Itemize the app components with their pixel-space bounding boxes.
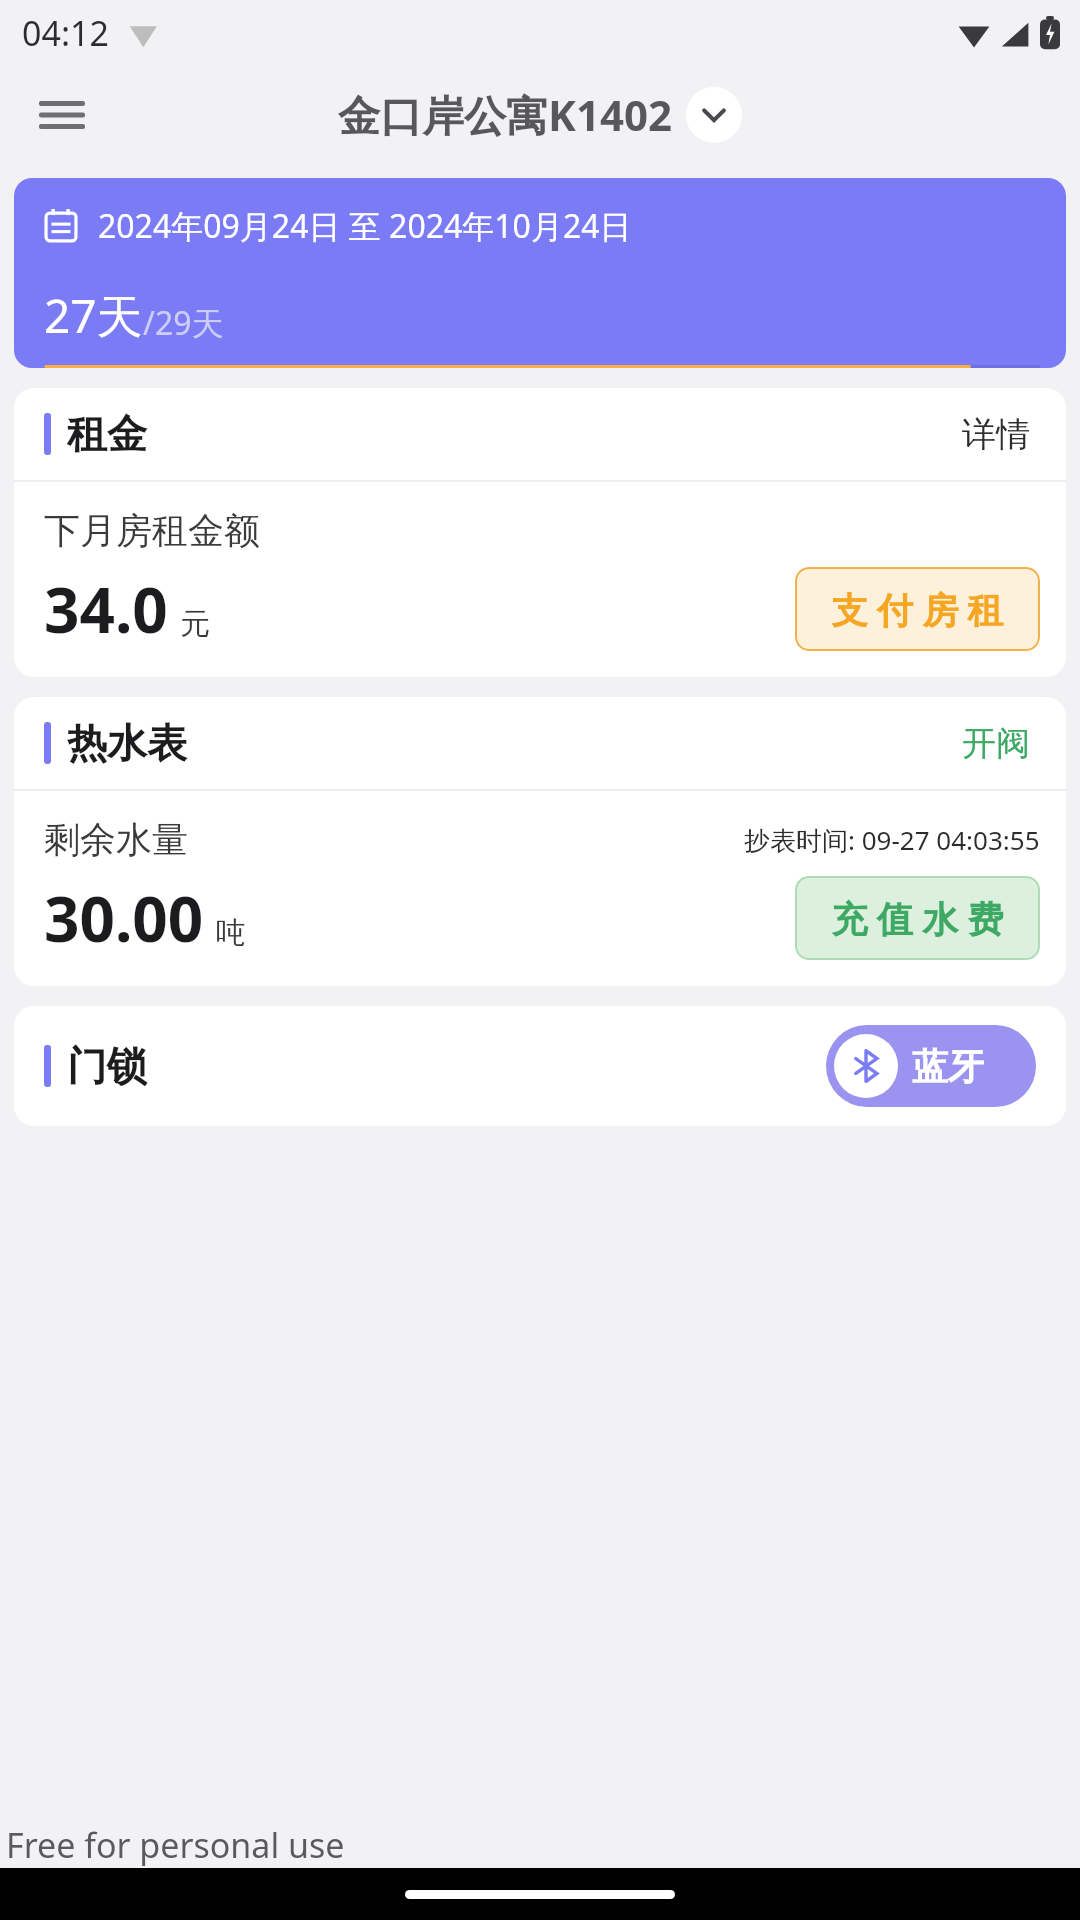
staticText: 抄表时间: 09-27 04:03:55 [744, 822, 1040, 858]
staticText: 27天 [44, 284, 143, 347]
button[interactable]: 支 付 房 租 [795, 567, 1040, 651]
button[interactable]: 开阀 [956, 716, 1036, 771]
button[interactable]: Switch apartment [686, 87, 742, 143]
staticText: 充 值 水 费 [831, 894, 1004, 943]
button[interactable]: 详情 [956, 407, 1036, 462]
staticText: 开阀 [962, 722, 1030, 765]
staticText: 详情 [962, 413, 1030, 456]
staticText: 34.0 [44, 567, 168, 651]
staticText: 门锁 [67, 1041, 147, 1091]
staticText: 04:12 [22, 10, 109, 56]
staticText: 下月房租金额 [44, 508, 260, 553]
staticText: 蓝牙 [912, 1044, 984, 1089]
button[interactable]: 蓝牙 [826, 1025, 1036, 1107]
staticText: /29天 [143, 301, 224, 345]
button[interactable]: 2024年09月24日 至 2024年10月24日 [14, 178, 1066, 368]
button[interactable]: 充 值 水 费 [795, 876, 1040, 960]
staticText: 金口岸公寓K1402 [338, 86, 672, 143]
staticText: 元 [180, 605, 210, 643]
staticText: 30.00 [44, 876, 204, 960]
button[interactable]: Menu [36, 88, 88, 140]
staticText: Free for personal use [6, 1822, 345, 1868]
staticText: 热水表 [67, 718, 187, 768]
staticText: 支 付 房 租 [831, 585, 1004, 634]
staticText: 2024年09月24日 至 2024年10月24日 [98, 204, 632, 248]
staticText: 吨 [216, 914, 246, 952]
staticText: 租金 [67, 409, 147, 459]
staticText: 剩余水量 [44, 817, 188, 862]
